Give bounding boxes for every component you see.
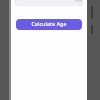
- staticText: Calculate Age: [31, 21, 67, 28]
- button[interactable]: Calculate Age: [16, 19, 82, 30]
- button[interactable]: Pick date: [15, 0, 83, 6]
- button[interactable]: Pick date: [76, 0, 81, 1]
